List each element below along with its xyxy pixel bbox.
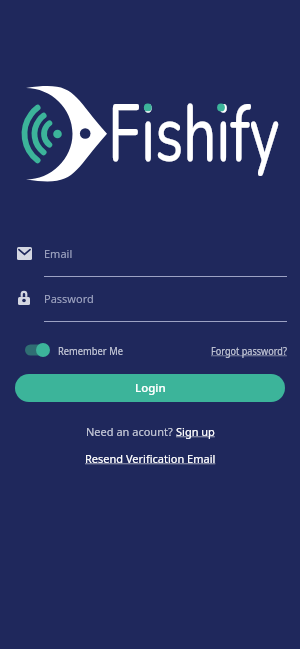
staticText: Sign up	[176, 424, 215, 439]
staticText: Password	[44, 291, 94, 306]
staticText: Remember Me	[58, 343, 123, 358]
staticText: Resend Verification Email	[85, 451, 216, 466]
button[interactable]: Login	[15, 374, 285, 402]
button[interactable]: Password	[0, 288, 300, 328]
staticText: Fishify	[108, 80, 280, 189]
staticText: Need an acount?	[86, 424, 176, 439]
button[interactable]: Resend Verification Email	[85, 451, 216, 466]
button[interactable]: Email	[0, 243, 300, 283]
staticText: Email	[44, 246, 73, 261]
button[interactable]: Sign up	[176, 424, 215, 439]
other: Email	[16, 245, 32, 261]
staticText: Login	[135, 380, 166, 396]
other: Password	[16, 290, 32, 306]
button[interactable]: Forgot password?	[211, 340, 300, 360]
button[interactable]: Remember Me	[25, 340, 135, 360]
staticText: Forgot password?	[211, 343, 287, 358]
